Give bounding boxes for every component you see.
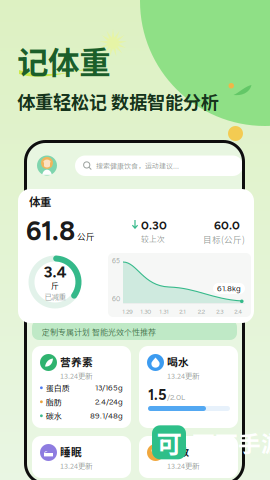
staticText: 3.4: [43, 262, 66, 281]
staticText: 13/165g: [95, 383, 123, 393]
staticText: 已减重: [44, 291, 65, 302]
button[interactable]: 搜索健康饮食，运动建议...: [75, 155, 243, 176]
staticText: 61.8kg: [217, 284, 241, 293]
staticText: 脂肪: [46, 396, 62, 408]
staticText: 1.5: [148, 386, 167, 404]
staticText: 1.29: [122, 308, 132, 315]
staticText: 2.1: [179, 308, 186, 315]
staticText: 0.30: [141, 218, 167, 232]
staticText: 61.8: [26, 215, 75, 247]
staticText: 60: [112, 295, 120, 303]
staticText: 89.1/48g: [90, 411, 123, 421]
staticText: 2.3: [216, 308, 223, 315]
staticText: 喝水: [167, 354, 189, 369]
staticText: 定制专属计划 智能光效个性推荐: [42, 326, 156, 338]
staticText: 可可手游: [192, 426, 270, 459]
staticText: 斤: [51, 279, 59, 291]
staticText: 13.24更新: [167, 370, 199, 381]
staticText: 可: [156, 424, 181, 461]
staticText: 2.2: [198, 308, 205, 315]
staticText: 1.30: [140, 308, 151, 315]
staticText: 记体重: [17, 38, 110, 83]
staticText: 搜索健康饮食，运动建议...: [96, 161, 179, 171]
staticText: 65: [112, 257, 120, 265]
staticText: /2.0L: [167, 392, 185, 402]
staticText: 13.24更新: [60, 460, 92, 471]
staticText: 体重轻松记 数据智能分析: [17, 88, 219, 114]
staticText: 碳水: [46, 410, 62, 422]
staticText: 13.24更新: [167, 460, 199, 471]
staticText: 睡眠: [60, 444, 82, 459]
staticText: 公斤: [77, 230, 95, 242]
staticText: 营养素: [60, 354, 93, 369]
staticText: 蛋白质: [46, 382, 70, 394]
staticText: 体重: [29, 193, 51, 209]
staticText: 60.0: [214, 218, 240, 232]
staticText: 较上次: [141, 233, 165, 244]
staticText: 目标(公斤): [203, 233, 245, 245]
staticText: 2.4/24g: [95, 397, 123, 407]
staticText: 2.4: [234, 308, 242, 315]
staticText: 步数: [167, 444, 189, 459]
button[interactable]: Profile: [37, 155, 57, 175]
staticText: 13.24更新: [60, 370, 92, 381]
staticText: 1.31: [159, 308, 169, 315]
